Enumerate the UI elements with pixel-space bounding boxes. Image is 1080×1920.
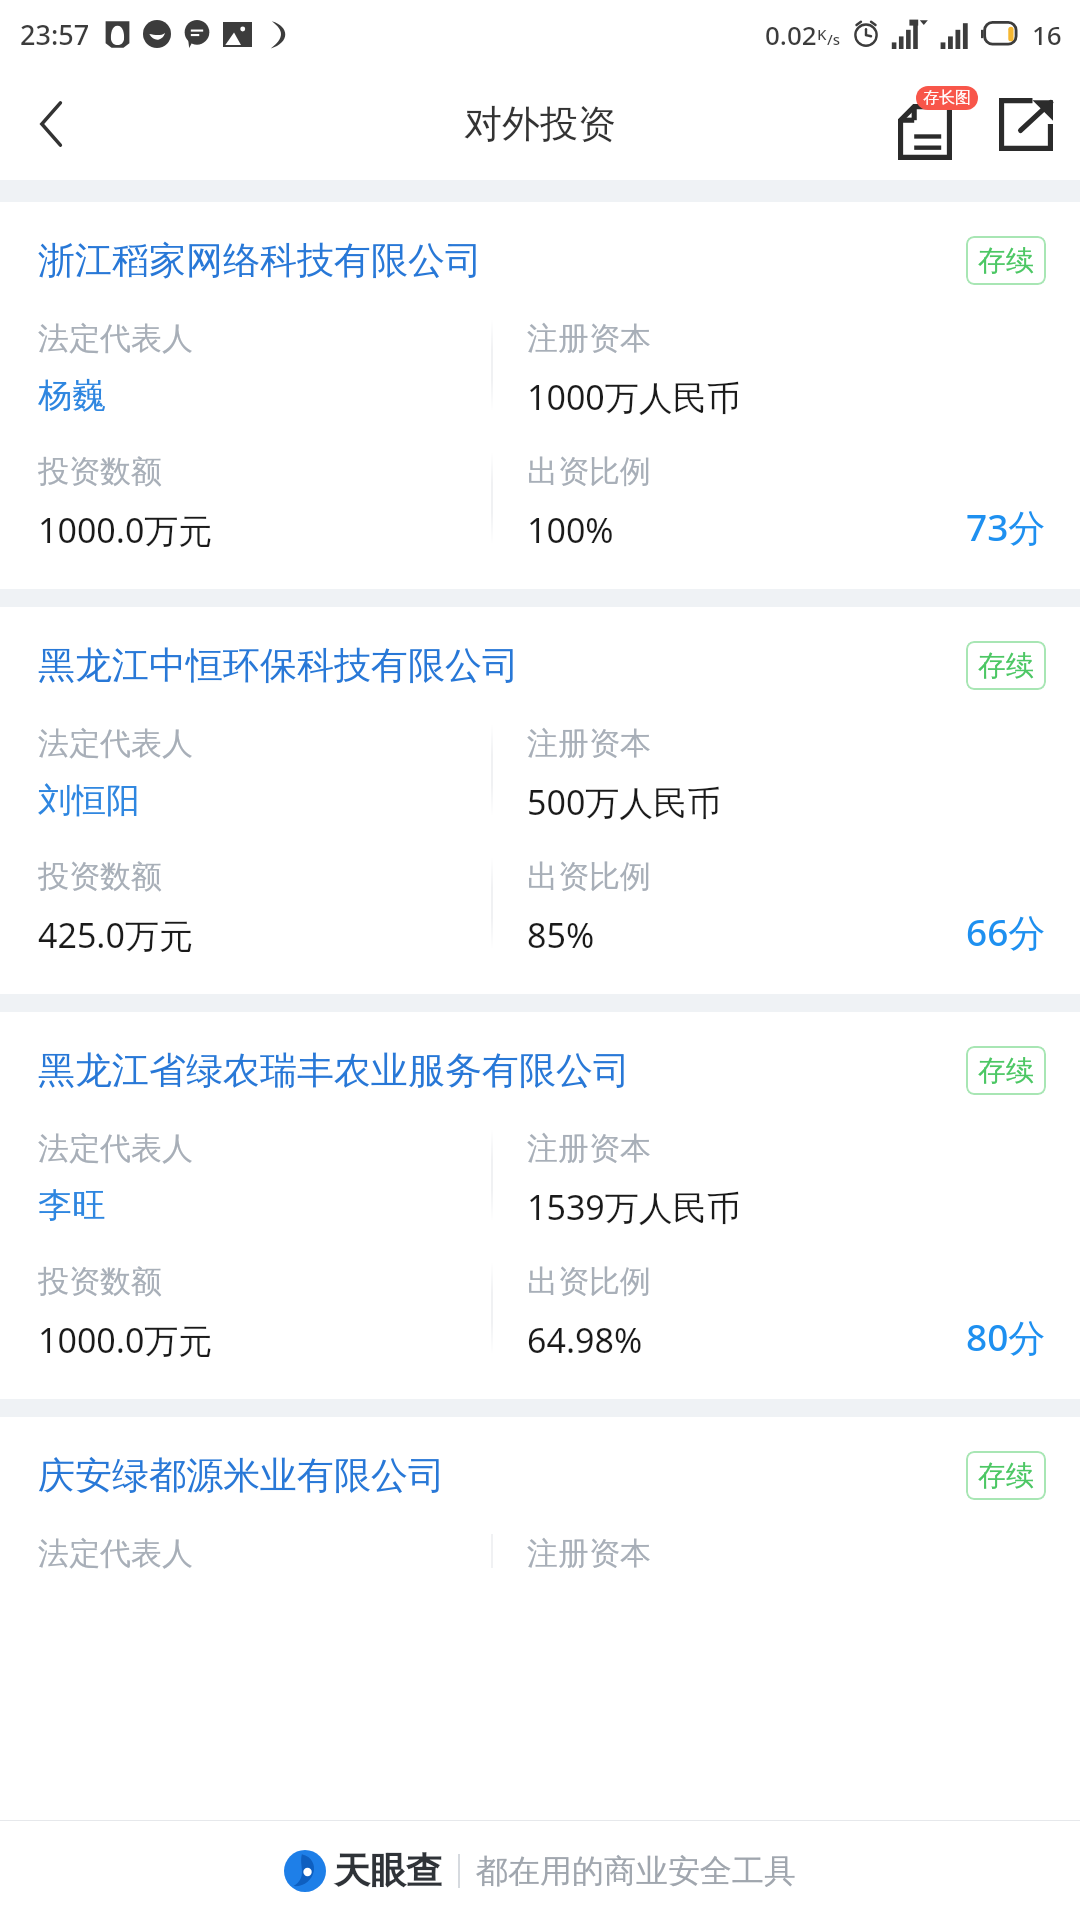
button[interactable]: 黑龙江中恒环保科技有限公司 [0,607,1080,994]
staticText: 73分 [966,501,1046,552]
staticText: 存续 [978,1053,1034,1088]
staticText: /s [827,29,841,49]
button[interactable]: Back [14,86,90,162]
staticText: 85% [527,912,595,958]
staticText: 存长图 [923,88,971,108]
staticText: 1000万人民币 [527,374,741,420]
button[interactable]: 浙江稻家网络科技有限公司 [0,202,1080,589]
staticText: 23:57 [20,16,90,53]
button[interactable]: 黑龙江省绿农瑞丰农业服务有限公司 [0,1012,1080,1399]
staticText: 64.98% [527,1317,643,1363]
staticText: 黑龙江省绿农瑞丰农业服务有限公司 [38,1047,950,1094]
staticText: 对外投资 [464,100,616,148]
staticText: K [817,24,827,44]
staticText: 李旺 [38,1184,106,1227]
staticText: 庆安绿都源米业有限公司 [38,1452,950,1499]
staticText: 存续 [978,648,1034,683]
staticText: 出资比例 [527,1262,651,1301]
staticText: 法定代表人 [38,724,193,763]
button[interactable]: 庆安绿都源米业有限公司 [0,1417,1080,1573]
staticText: 都在用的商业安全工具 [476,1851,796,1891]
staticText: 注册资本 [527,1534,651,1573]
staticText: 0.02 [765,17,817,52]
staticText: 天眼查 [334,1848,442,1893]
staticText: 注册资本 [527,1129,651,1168]
staticText: 存续 [978,243,1034,278]
staticText: 66分 [966,906,1046,957]
staticText: 注册资本 [527,724,651,763]
button[interactable]: 保存长图 [890,82,978,166]
staticText: 投资数额 [38,1262,162,1301]
staticText: 500万人民币 [527,779,722,825]
staticText: 注册资本 [527,319,651,358]
staticText: 投资数额 [38,857,162,896]
staticText: 法定代表人 [38,1129,193,1168]
staticText: 投资数额 [38,452,162,491]
staticText: 80分 [966,1311,1046,1362]
staticText: 出资比例 [527,857,651,896]
staticText: 法定代表人 [38,319,193,358]
staticText: 存续 [978,1458,1034,1493]
staticText: 1000.0万元 [38,1317,213,1363]
staticText: 100% [527,507,614,553]
staticText: 425.0万元 [38,912,193,958]
staticText: 黑龙江中恒环保科技有限公司 [38,642,950,689]
staticText: 刘恒阳 [38,779,140,822]
staticText: 1539万人民币 [527,1184,741,1230]
staticText: 浙江稻家网络科技有限公司 [38,237,950,284]
staticText: 法定代表人 [38,1534,193,1573]
staticText: 出资比例 [527,452,651,491]
button[interactable]: Share [986,82,1066,166]
staticText: 杨巍 [38,374,106,417]
staticText: 1000.0万元 [38,507,213,553]
staticText: 16 [1032,17,1062,52]
